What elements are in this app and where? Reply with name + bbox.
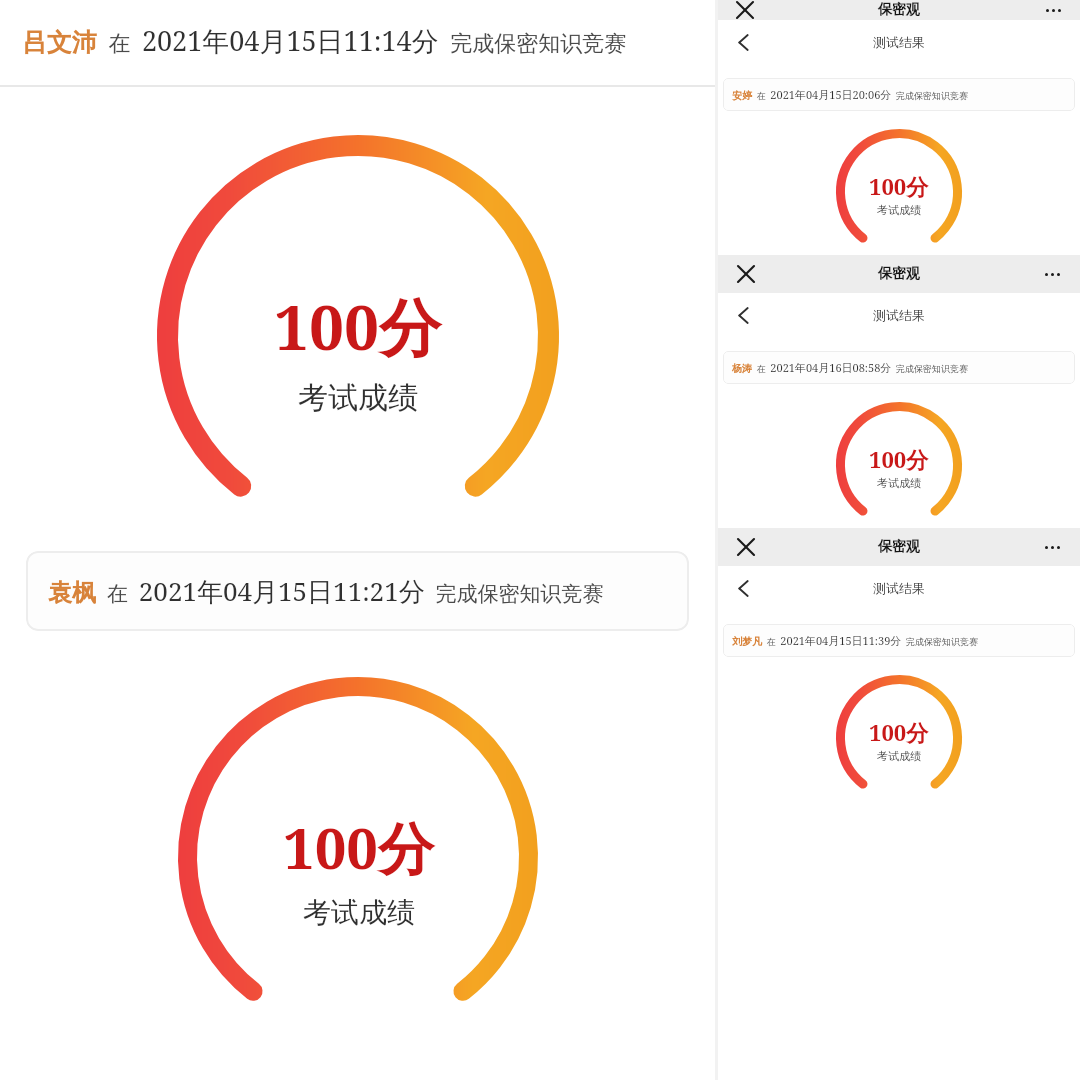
staticText: 100分 (274, 284, 442, 369)
staticText: 保密观 (878, 1, 920, 19)
staticText: 测试结果 (873, 580, 925, 596)
staticText: 杨涛 在 2021年04月16日08:58分 完成保密知识竞赛 (732, 360, 968, 375)
staticText: 考试成绩 (877, 476, 921, 490)
staticText: 考试成绩 (298, 379, 418, 417)
staticText: 100分 (869, 444, 929, 474)
staticText: 考试成绩 (877, 203, 921, 217)
staticText: 安婷 在 2021年04月15日20:06分 完成保密知识竞赛 (732, 87, 968, 102)
staticText: 测试结果 (873, 307, 925, 323)
staticText: 刘梦凡 在 2021年04月15日11:39分 完成保密知识竞赛 (732, 633, 978, 648)
staticText: 考试成绩 (303, 895, 415, 930)
staticText: 保密观 (878, 538, 920, 556)
staticText: 100分 (869, 717, 929, 747)
button[interactable]: Back (728, 573, 759, 604)
button[interactable]: Close (730, 0, 760, 20)
staticText: 100分 (283, 809, 434, 885)
staticText: 测试结果 (873, 34, 925, 50)
button[interactable]: Close (730, 258, 762, 290)
button[interactable]: 吕文沛 在 2021年04月15日11:14分 完成保密知识竞赛 (0, 22, 715, 59)
staticText: 考试成绩 (877, 749, 921, 763)
staticText: 袁枫 在 2021年04月15日11:21分 完成保密知识竞赛 (48, 573, 604, 609)
button[interactable]: More options (1036, 258, 1068, 290)
button[interactable]: More options (1036, 531, 1068, 563)
button[interactable]: 袁枫 在 2021年04月15日11:21分 完成保密知识竞赛 (26, 551, 689, 631)
staticText: 保密观 (878, 265, 920, 283)
button[interactable]: Close (730, 531, 762, 563)
button[interactable]: Back (728, 300, 759, 331)
staticText: 100分 (869, 171, 929, 201)
button[interactable]: 杨涛 在 2021年04月16日08:58分 完成保密知识竞赛 (723, 351, 1075, 384)
button[interactable]: Back (728, 27, 759, 58)
button[interactable]: 安婷 在 2021年04月15日20:06分 完成保密知识竞赛 (723, 78, 1075, 111)
button[interactable]: 刘梦凡 在 2021年04月15日11:39分 完成保密知识竞赛 (723, 624, 1075, 657)
button[interactable]: More options (1038, 0, 1068, 20)
